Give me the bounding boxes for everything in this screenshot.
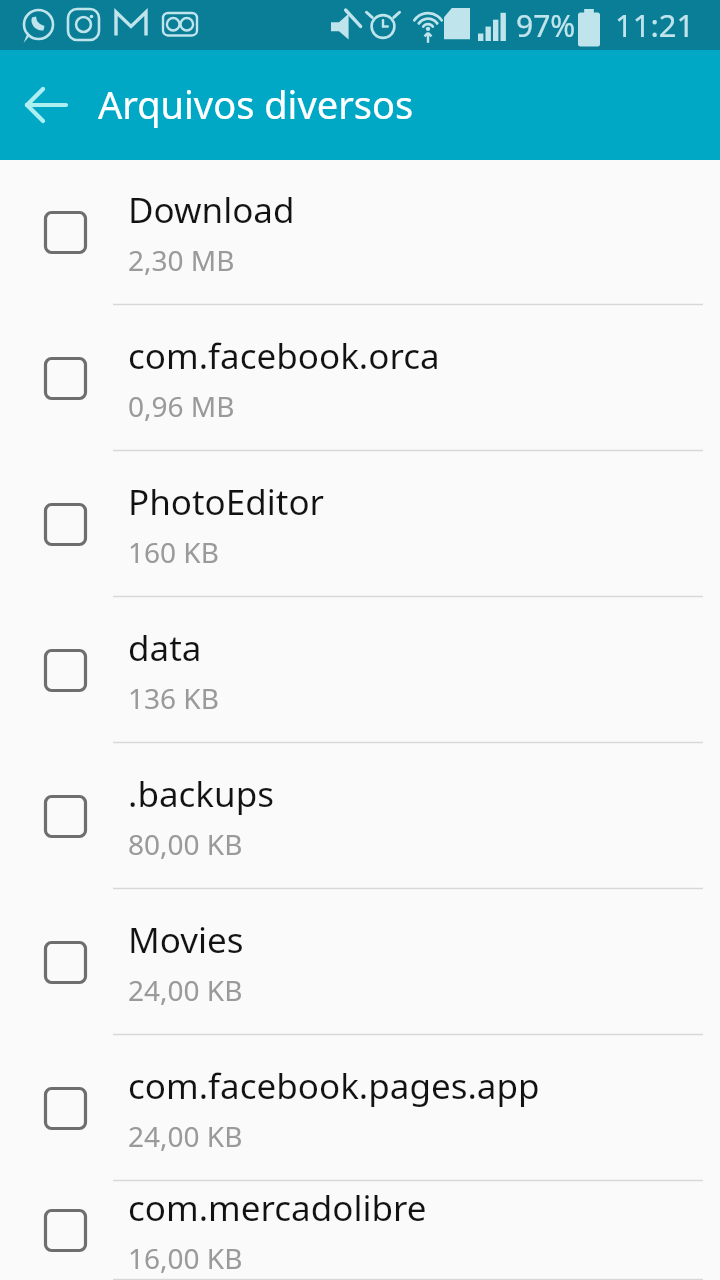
staticText: com.mercadolibre <box>128 1184 427 1232</box>
staticText: 0,96 MB <box>128 387 235 425</box>
button[interactable]: com.facebook.orca <box>0 305 720 451</box>
staticText: 16,00 KB <box>128 1239 243 1277</box>
staticText: data <box>128 624 202 672</box>
button[interactable]: com.mercadolibre <box>0 1181 720 1280</box>
staticText: 24,00 KB <box>128 971 243 1009</box>
staticText: 80,00 KB <box>128 825 243 863</box>
staticText: Download <box>128 186 295 234</box>
button[interactable]: .backups <box>0 743 720 889</box>
staticText: PhotoEditor <box>128 478 325 526</box>
staticText: 160 KB <box>128 533 219 571</box>
staticText: Arquivos diversos <box>98 78 414 130</box>
staticText: 24,00 KB <box>128 1117 243 1155</box>
staticText: 136 KB <box>128 679 219 717</box>
button[interactable]: com.facebook.pages.app <box>0 1035 720 1181</box>
button[interactable]: PhotoEditor <box>0 451 720 597</box>
staticText: com.facebook.orca <box>128 332 440 380</box>
staticText: Movies <box>128 916 244 964</box>
staticText: 11:21 <box>615 4 695 46</box>
staticText: .backups <box>128 770 274 818</box>
button[interactable]: Back <box>16 68 90 142</box>
staticText: com.facebook.pages.app <box>128 1062 540 1110</box>
button[interactable]: Movies <box>0 889 720 1035</box>
button[interactable]: data <box>0 597 720 743</box>
staticText: 97% <box>516 5 576 46</box>
button[interactable]: Download <box>0 160 720 305</box>
staticText: 2,30 MB <box>128 241 235 279</box>
